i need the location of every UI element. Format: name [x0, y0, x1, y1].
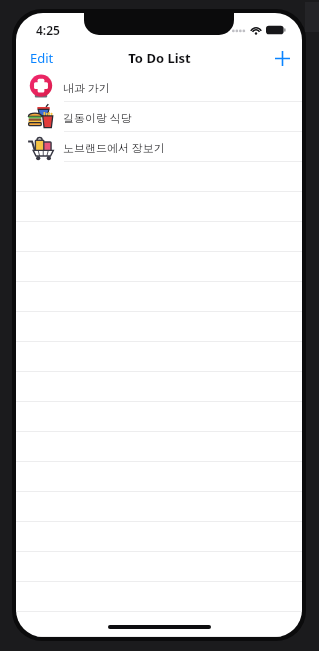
staticText: 4:25: [36, 22, 60, 38]
button[interactable]: 내과 가기: [16, 72, 302, 102]
button[interactable]: 노브랜드에서 장보기: [16, 132, 302, 162]
button[interactable]: Edit: [16, 45, 64, 71]
button[interactable]: 길동이랑 식당: [16, 102, 302, 132]
button[interactable]: Add item: [263, 48, 302, 69]
staticText: 노브랜드에서 장보기: [63, 140, 165, 155]
staticText: 내과 가기: [63, 80, 110, 95]
staticText: To Do List: [128, 49, 191, 67]
staticText: Edit: [30, 49, 54, 67]
staticText: 길동이랑 식당: [63, 110, 132, 125]
